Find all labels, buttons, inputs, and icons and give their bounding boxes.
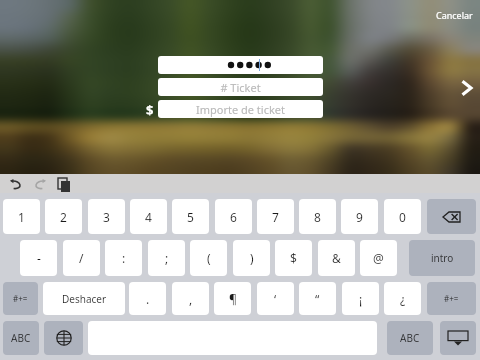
- button[interactable]: ABC: [3, 321, 39, 355]
- staticText: Deshacer: [62, 292, 107, 306]
- button[interactable]: Siguiente: [458, 76, 476, 100]
- staticText: $: [290, 250, 297, 266]
- button[interactable]: #+=: [427, 282, 476, 315]
- staticText: :: [122, 250, 126, 266]
- button[interactable]: Cancelar: [432, 6, 477, 24]
- button[interactable]: ¡: [342, 282, 379, 315]
- staticText: 6: [230, 209, 237, 225]
- staticText: # Ticket: [158, 80, 323, 96]
- staticText: 7: [272, 209, 279, 225]
- button[interactable]: 1: [3, 199, 40, 234]
- button[interactable]: Borrar: [427, 199, 476, 234]
- button[interactable]: &: [318, 240, 355, 276]
- button[interactable]: 2: [45, 199, 82, 234]
- staticText: (: [207, 250, 211, 266]
- button[interactable]: Ocultar teclado: [440, 321, 476, 355]
- button[interactable]: ¿: [384, 282, 421, 315]
- button[interactable]: ): [233, 240, 270, 276]
- button[interactable]: $: [275, 240, 312, 276]
- button[interactable]: [158, 56, 323, 74]
- button[interactable]: Deshacer: [43, 282, 125, 315]
- button[interactable]: .: [129, 282, 166, 315]
- button[interactable]: 6: [215, 199, 252, 234]
- button[interactable]: #+=: [3, 282, 38, 315]
- staticText: 0: [399, 209, 406, 225]
- staticText: &: [332, 250, 341, 266]
- staticText: ¿: [400, 291, 406, 307]
- staticText: ): [250, 250, 254, 266]
- staticText: @: [373, 250, 384, 266]
- staticText: /: [79, 250, 84, 266]
- staticText: Cancelar: [436, 9, 473, 21]
- staticText: .: [146, 291, 150, 307]
- button[interactable]: 9: [341, 199, 378, 234]
- staticText: 5: [187, 209, 194, 225]
- button[interactable]: /: [63, 240, 100, 276]
- staticText: -: [37, 250, 41, 266]
- staticText: 8: [314, 209, 321, 225]
- button[interactable]: Rehacer: [32, 176, 48, 192]
- button[interactable]: Importe de ticket: [158, 100, 323, 118]
- staticText: 3: [103, 209, 110, 225]
- button[interactable]: ¶: [214, 282, 251, 315]
- staticText: $: [146, 101, 154, 119]
- staticText: ¶: [229, 291, 237, 307]
- button[interactable]: :: [105, 240, 142, 276]
- staticText: intro: [431, 251, 454, 265]
- button[interactable]: ;: [148, 240, 185, 276]
- button[interactable]: 3: [88, 199, 125, 234]
- staticText: ABC: [11, 331, 31, 345]
- staticText: ‘: [274, 291, 277, 307]
- button[interactable]: @: [360, 240, 397, 276]
- button[interactable]: intro: [409, 240, 475, 276]
- staticText: 1: [18, 209, 25, 225]
- button[interactable]: ,: [172, 282, 209, 315]
- staticText: Importe de ticket: [158, 102, 323, 118]
- staticText: 4: [145, 209, 152, 225]
- button[interactable]: Copiar: [56, 176, 72, 192]
- button[interactable]: “: [299, 282, 336, 315]
- button[interactable]: 4: [130, 199, 167, 234]
- staticText: ,: [189, 291, 193, 307]
- button[interactable]: (: [190, 240, 227, 276]
- staticText: ;: [165, 250, 169, 266]
- button[interactable]: ABC: [387, 321, 433, 355]
- button[interactable]: 8: [299, 199, 336, 234]
- button[interactable]: 5: [172, 199, 209, 234]
- button[interactable]: ‘: [257, 282, 294, 315]
- button[interactable]: 7: [257, 199, 294, 234]
- staticText: “: [315, 291, 320, 307]
- button[interactable]: -: [20, 240, 57, 276]
- button[interactable]: Deshacer: [8, 176, 24, 192]
- button[interactable]: # Ticket: [158, 78, 323, 96]
- staticText: #+=: [444, 293, 459, 304]
- staticText: 9: [356, 209, 363, 225]
- button[interactable]: Cambiar idioma: [44, 321, 83, 355]
- staticText: 2: [60, 209, 67, 225]
- staticText: ¡: [359, 291, 363, 307]
- staticText: ABC: [400, 331, 420, 345]
- staticText: #+=: [13, 293, 28, 304]
- button[interactable]: 0: [384, 199, 421, 234]
